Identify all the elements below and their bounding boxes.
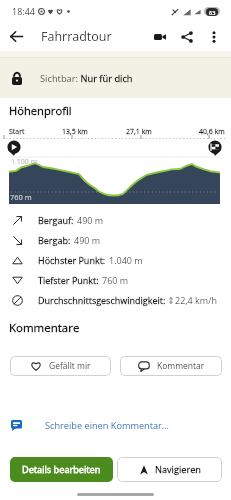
- staticText: 40,6 km: [199, 127, 225, 137]
- button[interactable]: Höchster Punkt:: [0, 250, 231, 270]
- staticText: Kommentar: [157, 360, 205, 372]
- button[interactable]: Sichtbar: Nur für dich: [0, 58, 231, 98]
- staticText: Sichtbar: Nur für dich: [40, 72, 133, 85]
- staticText: Start: [9, 127, 25, 137]
- staticText: 13,5 km: [62, 127, 88, 137]
- button[interactable]: Tiefster Punkt:: [0, 270, 231, 290]
- staticText: 1.100 m: [11, 157, 38, 167]
- staticText: 1.040 m: [109, 254, 143, 266]
- button[interactable]: Bergauf:: [0, 210, 231, 230]
- button[interactable]: Details bearbeiten: [10, 457, 113, 482]
- staticText: Kommentare: [9, 320, 80, 336]
- button[interactable]: Gefällt mir: [10, 356, 111, 376]
- button[interactable]: Share: [173, 22, 200, 51]
- button[interactable]: Record video: [146, 22, 173, 51]
- staticText: Tiefster Punkt:: [38, 274, 99, 286]
- staticText: Höhenprofil: [9, 103, 72, 118]
- staticText: Durchschnittsgeschwindigkeit:: [38, 294, 166, 306]
- staticText: Fahrradtour: [41, 28, 112, 45]
- staticText: 18:44: [12, 5, 35, 17]
- staticText: 22,4 km/h: [175, 294, 217, 306]
- staticText: 760 m: [102, 274, 129, 286]
- button[interactable]: Navigieren: [117, 457, 222, 482]
- button[interactable]: Durchschnittsgeschwindigkeit:: [0, 290, 231, 310]
- button[interactable]: More options: [200, 22, 227, 51]
- staticText: Gefällt mir: [49, 360, 91, 372]
- staticText: 27,1 km: [126, 127, 152, 137]
- button[interactable]: Schreibe einen Kommentar…: [0, 414, 231, 440]
- staticText: Schreibe einen Kommentar…: [45, 419, 170, 432]
- button[interactable]: Back: [0, 22, 33, 51]
- staticText: Bergab:: [38, 234, 71, 246]
- button[interactable]: Bergab:: [0, 230, 231, 250]
- staticText: 63: [209, 9, 216, 16]
- staticText: Details bearbeiten: [22, 463, 101, 476]
- staticText: 490 m: [74, 234, 101, 246]
- staticText: Navigieren: [155, 463, 201, 476]
- staticText: Höchster Punkt:: [38, 254, 106, 266]
- staticText: 490 m: [77, 214, 104, 226]
- staticText: 760 m: [10, 192, 32, 202]
- staticText: Bergauf:: [38, 214, 74, 226]
- button[interactable]: Kommentar: [120, 356, 222, 376]
